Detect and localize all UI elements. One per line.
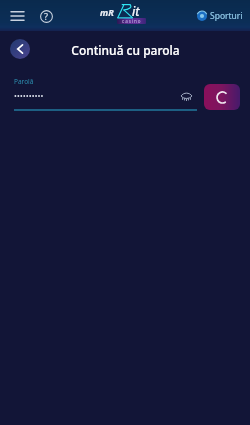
button[interactable]: Sporturi bbox=[197, 10, 243, 22]
staticText: it bbox=[132, 3, 140, 19]
button[interactable]: Back bbox=[10, 39, 30, 59]
button[interactable]: MrBit Casino bbox=[99, 0, 147, 24]
button[interactable]: Continue bbox=[204, 84, 240, 110]
staticText: ? bbox=[44, 10, 49, 22]
button[interactable]: Menu bbox=[5, 4, 29, 28]
button[interactable]: Show password bbox=[177, 87, 195, 105]
staticText: Parolă bbox=[14, 77, 34, 86]
button[interactable]: Help bbox=[34, 4, 58, 28]
staticText: Sporturi bbox=[210, 10, 243, 22]
staticText: Continuă cu parola bbox=[71, 42, 180, 58]
staticText: mR bbox=[100, 6, 114, 18]
staticText: casino bbox=[122, 18, 142, 24]
